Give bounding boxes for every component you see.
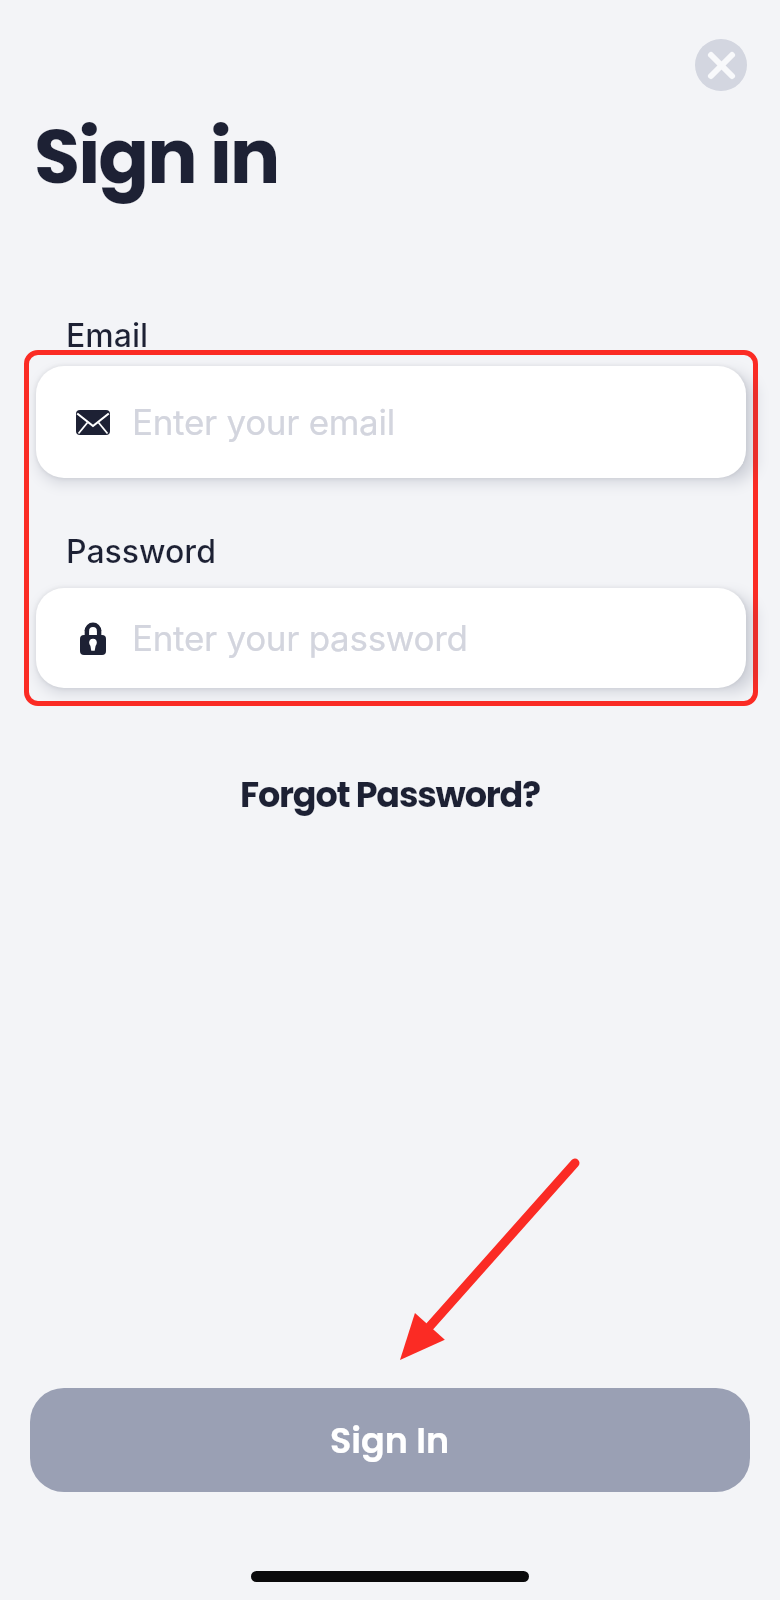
button[interactable]	[695, 39, 747, 91]
button[interactable]: Sign In	[30, 1388, 750, 1492]
staticText: Enter your password	[132, 617, 468, 659]
staticText: Forgot Password?	[240, 770, 540, 819]
button[interactable]: Forgot Password?	[240, 770, 540, 819]
staticText: Enter your email	[132, 401, 395, 443]
staticText: Email	[66, 316, 149, 355]
button[interactable]: Enter your email	[36, 366, 746, 478]
staticText: Password	[66, 532, 216, 571]
staticText: Sign in	[34, 104, 279, 209]
button[interactable]: Enter your password	[36, 588, 746, 688]
staticText: Sign In	[330, 1416, 450, 1465]
